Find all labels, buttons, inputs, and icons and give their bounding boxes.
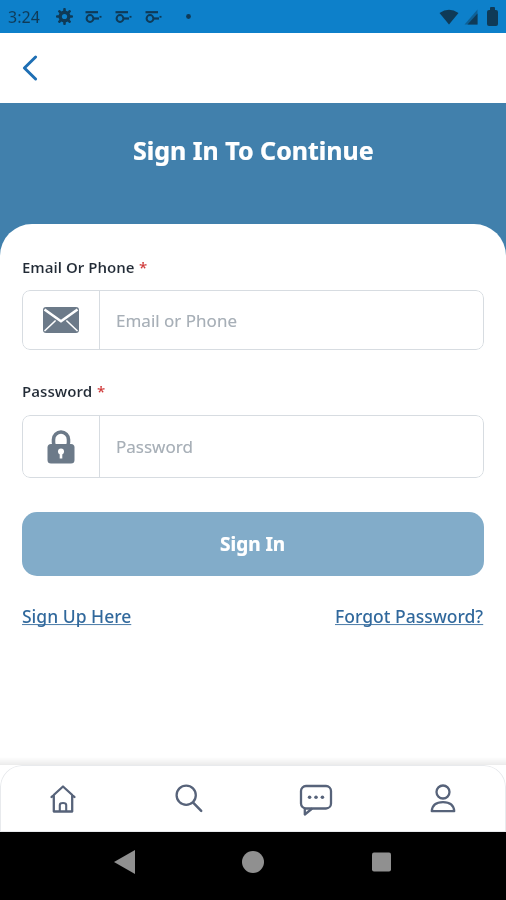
button[interactable] <box>12 50 48 86</box>
staticText: * <box>93 381 106 401</box>
staticText: Sign In To Continue <box>133 133 374 167</box>
button[interactable]: Password <box>22 415 484 478</box>
button[interactable] <box>379 765 506 832</box>
button[interactable] <box>0 765 126 832</box>
staticText: Email Or Phone <box>22 257 135 277</box>
staticText: * <box>135 257 148 277</box>
button[interactable] <box>252 765 379 832</box>
button[interactable]: Email or Phone <box>22 290 484 350</box>
staticText: Sign In <box>220 531 286 557</box>
button[interactable]: Sign In <box>22 512 484 576</box>
staticText: Email or Phone <box>116 309 237 332</box>
staticText: Password <box>22 381 93 401</box>
button[interactable] <box>126 765 252 832</box>
staticText: Password <box>116 435 193 458</box>
button[interactable]: Sign Up Here <box>22 604 132 628</box>
button[interactable]: Forgot Password? <box>335 604 484 628</box>
staticText: 3:24 <box>8 6 40 28</box>
